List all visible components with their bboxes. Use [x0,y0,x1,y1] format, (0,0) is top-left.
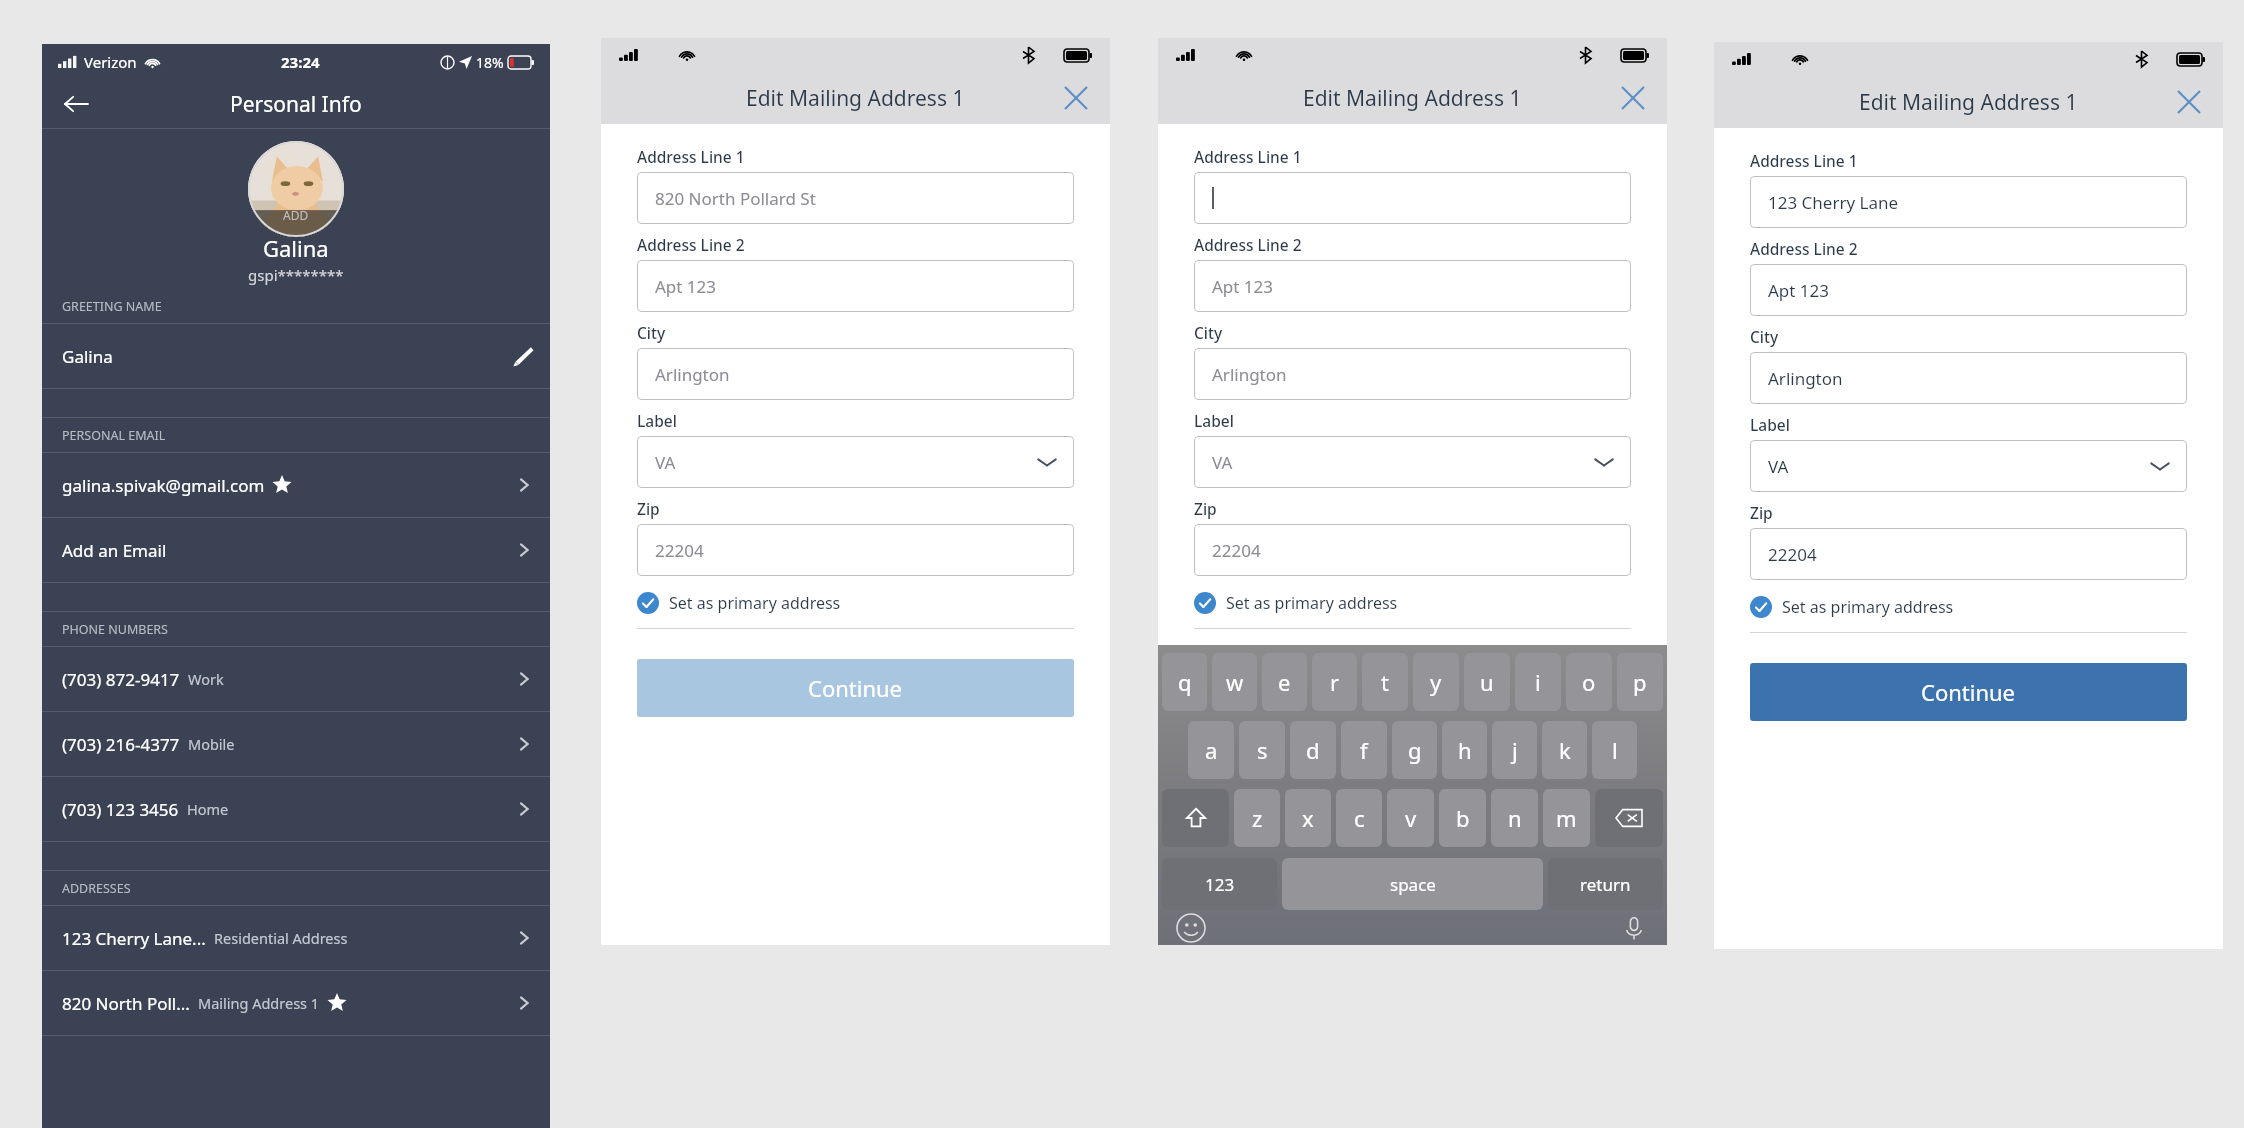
staticText: Continue [1921,677,2016,707]
button[interactable]: a [1188,721,1234,779]
button[interactable]: 123 Cherry Lane [1750,176,2187,228]
button[interactable]: s [1239,721,1285,779]
button[interactable]: Dictation [1619,913,1649,943]
staticText: PHONE NUMBERS [62,621,168,638]
button[interactable]: Arlington [1194,348,1631,400]
staticText: Home [187,799,229,819]
button[interactable]: e [1262,653,1307,711]
staticText: u [1480,667,1494,697]
staticText: 123 Cherry Lane... [62,927,206,950]
button[interactable]: q [1162,653,1207,711]
button[interactable]: p [1617,653,1663,711]
staticText: Edit Mailing Address 1 [1303,84,1522,113]
staticText: galina.spivak@gmail.com [62,474,265,497]
staticText: Mailing Address 1 [198,993,320,1013]
staticText: o [1582,667,1596,697]
button[interactable]: w [1212,653,1257,711]
button[interactable]: l [1592,721,1637,779]
button[interactable]: Continue [637,659,1074,717]
button[interactable]: 123 Cherry Lane... [42,906,550,970]
button[interactable]: b [1439,789,1486,847]
button[interactable]: v [1387,789,1434,847]
button[interactable]: (703) 216-4377 [42,712,550,776]
staticText: VA [1768,455,1789,478]
button[interactable]: h [1442,721,1487,779]
button[interactable]: g [1392,721,1437,779]
staticText: e [1278,667,1291,697]
staticText: Zip [637,498,660,519]
button[interactable]: Set as primary address [1750,596,1954,618]
button[interactable]: 22204 [1194,524,1631,576]
button[interactable]: Set as primary address [637,592,841,614]
staticText: Continue [808,673,903,703]
staticText: 23:24 [281,52,320,72]
button[interactable]: Close [1611,76,1655,120]
button[interactable]: z [1234,789,1280,847]
button[interactable]: Arlington [637,348,1074,400]
staticText: Edit Mailing Address 1 [746,84,965,113]
staticText: Set as primary address [669,592,841,614]
staticText: gspi******** [248,265,344,285]
staticText: f [1360,735,1368,765]
button[interactable]: r [1312,653,1357,711]
button[interactable]: Close [2167,80,2211,124]
staticText: Add an Email [62,539,167,562]
staticText: Label [1194,410,1234,431]
button[interactable]: (703) 123 3456 [42,777,550,841]
button[interactable]: Set as primary address [1194,592,1398,614]
button[interactable]: Apt 123 [1194,260,1631,312]
staticText: Address Line 2 [1194,234,1302,255]
staticText: VA [655,451,676,474]
button[interactable]: c [1336,789,1382,847]
button[interactable]: t [1362,653,1408,711]
button[interactable]: Arlington [1750,352,2187,404]
button[interactable]: (703) 872-9417 [42,647,550,711]
button[interactable]: j [1492,721,1537,779]
staticText: (703) 216-4377 [62,733,180,756]
staticText: Label [637,410,677,431]
button[interactable]: 820 North Pollard St [637,172,1074,224]
staticText: Apt 123 [655,275,717,298]
button[interactable]: 820 North Poll... [42,971,550,1035]
staticText: Galina [263,233,329,263]
button[interactable]: n [1491,789,1538,847]
staticText: ADD [283,207,309,223]
button[interactable]: VA [1194,436,1631,488]
button[interactable]: Galina [42,324,550,388]
staticText: d [1306,735,1320,765]
button[interactable]: x [1285,789,1331,847]
button[interactable]: Back [54,82,98,126]
button[interactable]: space [1282,858,1543,910]
button[interactable]: 22204 [637,524,1074,576]
button[interactable]: d [1290,721,1336,779]
button[interactable] [1194,172,1631,224]
button[interactable]: Close [1054,76,1098,120]
staticText: City [1194,322,1223,343]
button[interactable]: Add an Email [42,518,550,582]
button[interactable]: return [1548,858,1663,910]
button[interactable]: VA [1750,440,2187,492]
button[interactable]: VA [637,436,1074,488]
staticText: 22204 [655,539,704,562]
staticText: Mobile [188,734,235,754]
button[interactable]: Apt 123 [637,260,1074,312]
button[interactable]: Apt 123 [1750,264,2187,316]
button[interactable] [1162,789,1229,847]
button[interactable]: galina.spivak@gmail.com [42,453,550,517]
button[interactable]: Add photo [248,141,344,237]
button[interactable]: m [1543,789,1590,847]
button[interactable]: Emoji [1176,913,1206,943]
button[interactable]: Continue [1750,663,2187,721]
staticText: p [1633,667,1647,697]
button[interactable]: i [1515,653,1561,711]
button[interactable]: 22204 [1750,528,2187,580]
button[interactable]: Continue [1194,659,1631,717]
button[interactable]: y [1413,653,1459,711]
button[interactable]: k [1542,721,1587,779]
button[interactable]: f [1341,721,1387,779]
button[interactable]: o [1566,653,1612,711]
staticText: 123 Cherry Lane [1768,191,1899,214]
button[interactable]: 123 [1162,858,1277,910]
button[interactable]: u [1464,653,1510,711]
button[interactable] [1595,789,1663,847]
